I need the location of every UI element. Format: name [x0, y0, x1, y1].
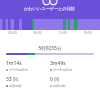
staticText: 1m14s — [6, 60, 22, 67]
button[interactable]: 3m49s — [50, 60, 94, 72]
button[interactable]: 33 回 — [6, 76, 50, 88]
staticText: かわいいユーザーとの比較 — [24, 6, 76, 11]
staticText: 起動回数 — [53, 84, 66, 88]
staticText: 18:00 — [75, 31, 100, 35]
staticText: 33 回 — [6, 76, 19, 83]
staticText: 12:00 — [50, 31, 75, 35]
staticText: 06:00 — [25, 31, 50, 35]
button[interactable]: 0 回 — [50, 76, 94, 88]
staticText: 平均利用時間 — [9, 68, 29, 72]
staticText: 5時間35分 — [0, 45, 100, 52]
staticText: 3m49s — [50, 60, 66, 67]
staticText: 0 回 — [50, 76, 60, 83]
button[interactable]: 1m14s — [6, 60, 50, 72]
staticText: 00:00 — [0, 31, 25, 35]
staticText: 起動回数 — [9, 84, 22, 88]
staticText: 平均利用時間 — [53, 68, 73, 72]
